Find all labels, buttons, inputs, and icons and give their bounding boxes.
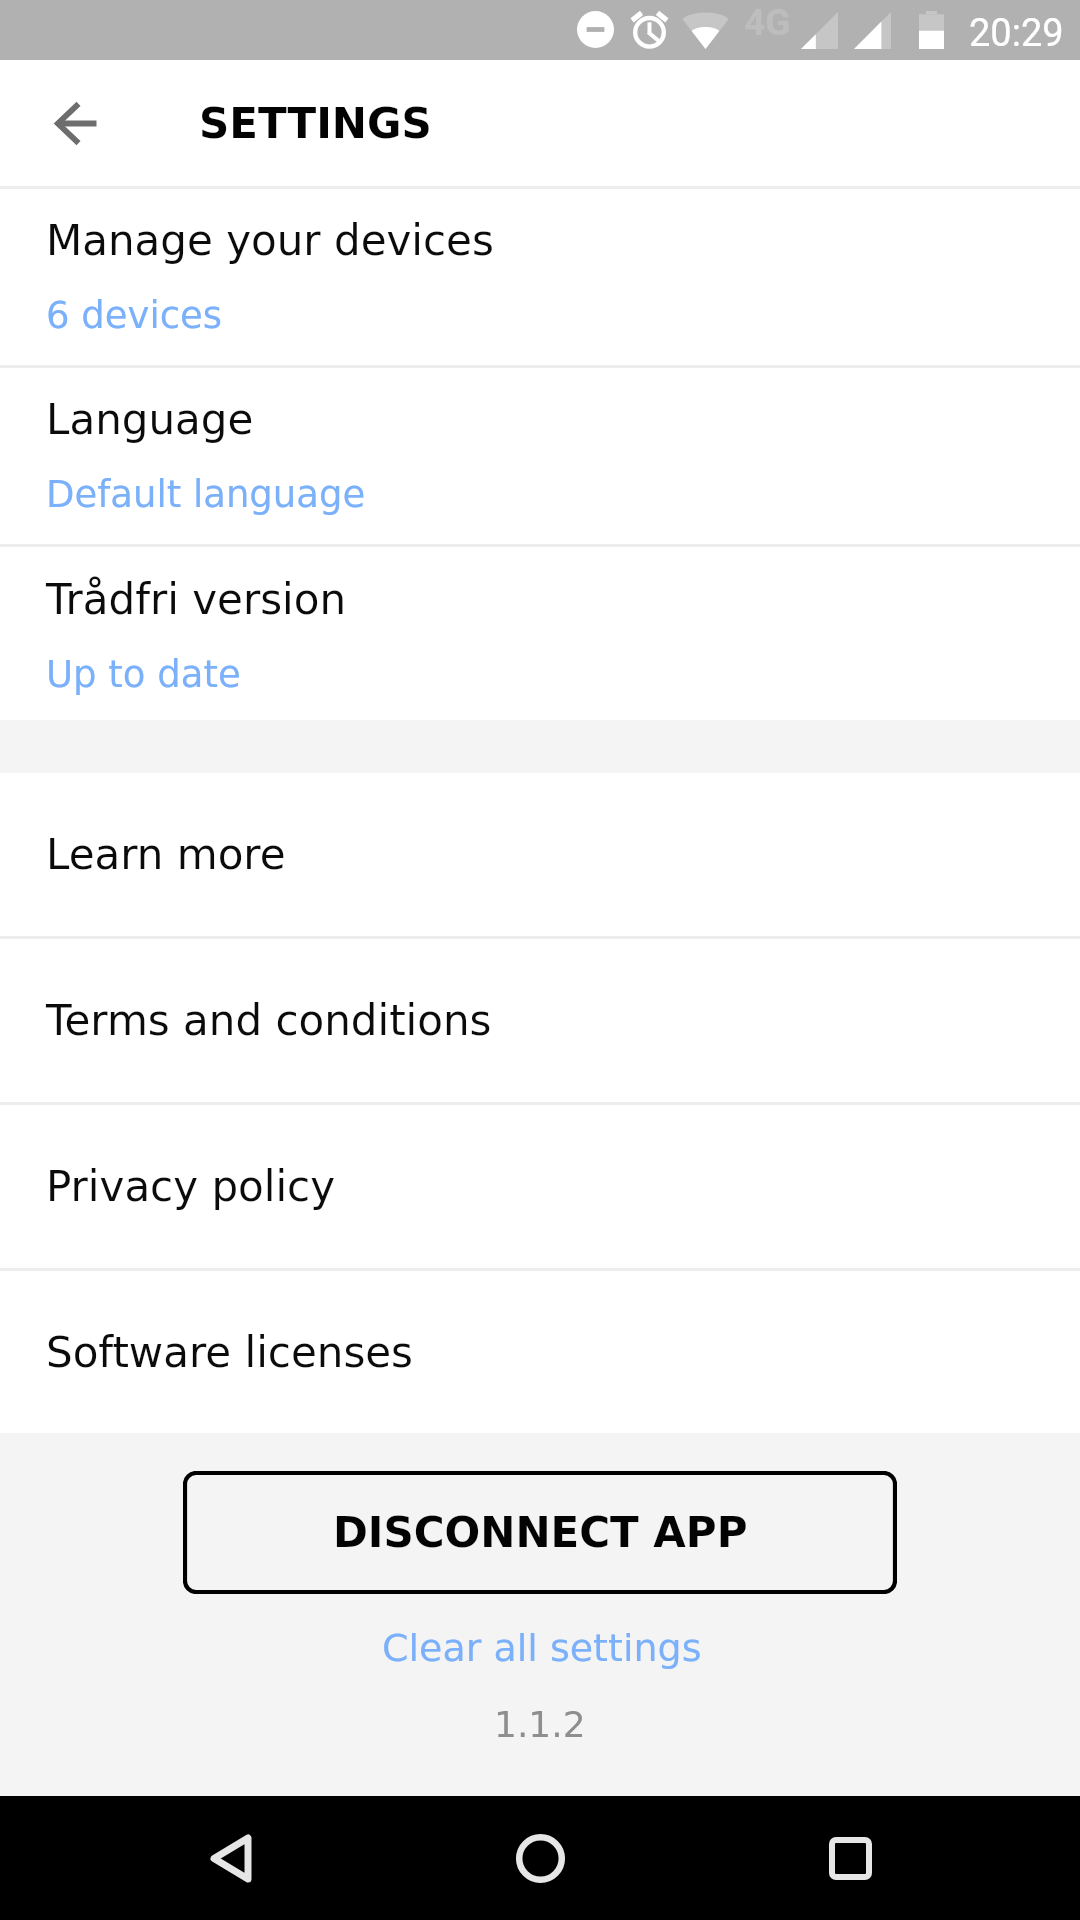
staticText: Manage your devices — [46, 216, 494, 265]
button[interactable]: Clear all settings — [368, 1619, 716, 1677]
staticText: 6 devices — [46, 294, 223, 337]
staticText: Default language — [46, 473, 366, 516]
button[interactable]: DISCONNECT APP — [183, 1471, 897, 1594]
button[interactable]: Navigate up — [28, 75, 124, 171]
staticText: Privacy policy — [46, 1162, 336, 1211]
button[interactable]: Privacy policy — [0, 1105, 1080, 1268]
staticText: 20:29 — [969, 11, 1064, 56]
staticText: Trådfri version — [46, 575, 347, 624]
staticText: DISCONNECT APP — [333, 1508, 748, 1557]
staticText: Software licenses — [46, 1328, 413, 1377]
staticText: SETTINGS — [199, 99, 432, 148]
staticText: Learn more — [46, 830, 286, 879]
button[interactable]: Learn more — [0, 773, 1080, 936]
staticText: 1.1.2 — [494, 1704, 586, 1746]
button[interactable]: Software licenses — [0, 1271, 1080, 1433]
staticText: Language — [46, 395, 254, 444]
button[interactable]: Trådfri version — [0, 547, 1080, 720]
button[interactable]: Recent apps — [800, 1808, 900, 1908]
staticText: Terms and conditions — [46, 996, 492, 1045]
button[interactable]: Language — [0, 368, 1080, 544]
staticText: 4G — [744, 1, 791, 44]
button[interactable]: Terms and conditions — [0, 939, 1080, 1102]
staticText: Up to date — [46, 653, 241, 696]
button[interactable]: Manage your devices — [0, 189, 1080, 365]
staticText: Clear all settings — [382, 1626, 702, 1670]
button[interactable]: Home — [490, 1808, 590, 1908]
button[interactable]: Back — [180, 1808, 280, 1908]
